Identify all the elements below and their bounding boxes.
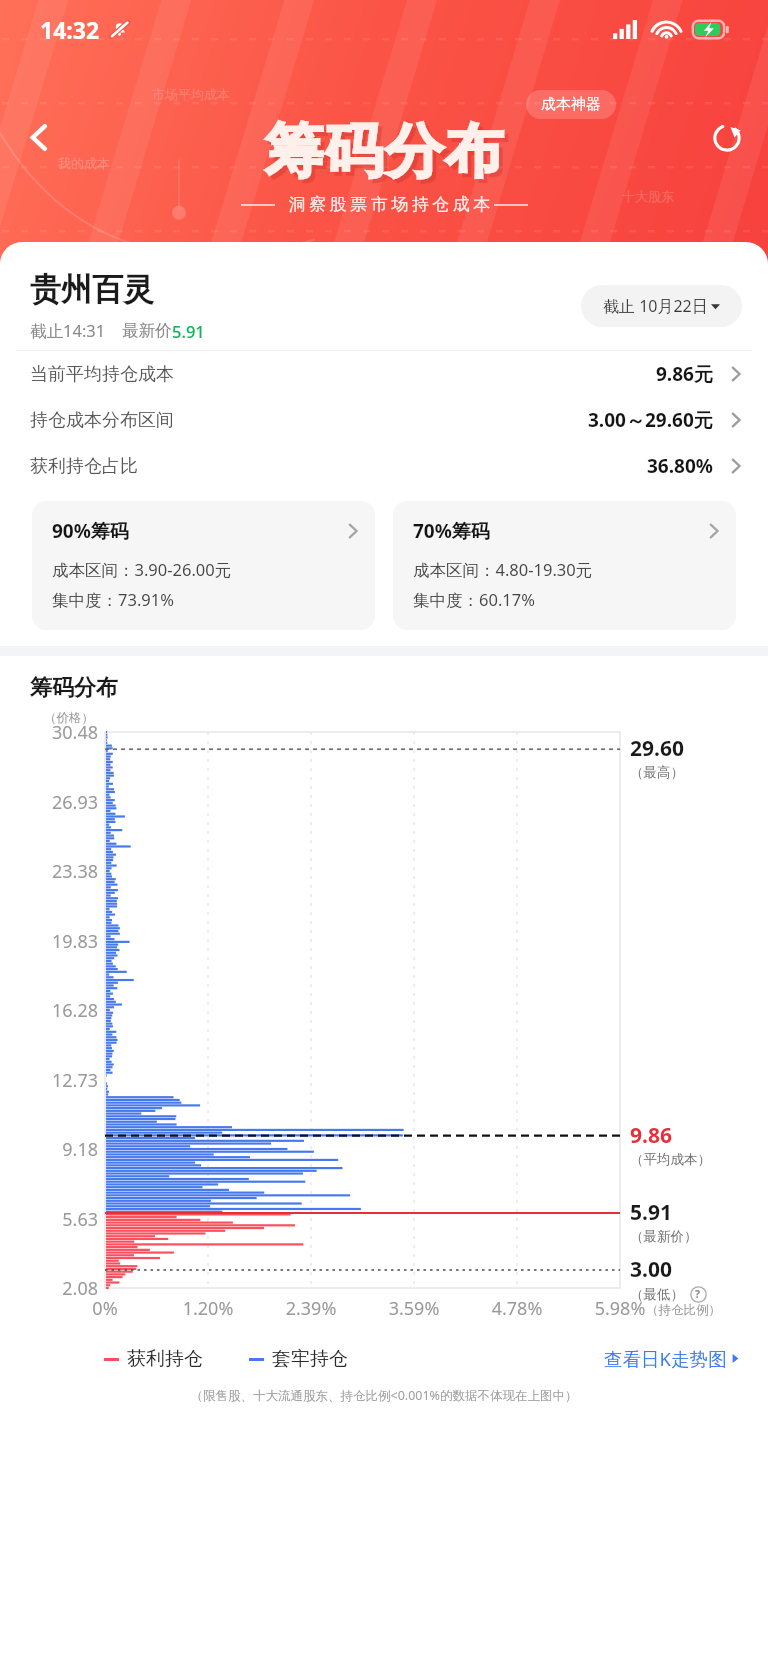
staticText: 14:32 <box>40 14 100 45</box>
staticText: （最新价） <box>630 1228 698 1245</box>
staticText: 集中度：60.17% <box>413 588 535 611</box>
staticText: 9.18 <box>24 1137 98 1162</box>
staticText: 获利持仓 <box>127 1347 203 1371</box>
staticText: 12.73 <box>24 1068 98 1093</box>
staticText: 3.00 <box>630 1255 672 1284</box>
staticText: 查看日K走势图 <box>604 1346 727 1371</box>
staticText: 3.00～29.60元 <box>588 407 713 433</box>
staticText: 23.38 <box>24 859 98 884</box>
staticText: 当前平均持仓成本 <box>30 363 174 386</box>
staticText: 集中度：73.91% <box>52 588 174 611</box>
staticText: 成本神器 <box>541 95 601 114</box>
staticText: 19.83 <box>24 929 98 954</box>
staticText: 2.39% <box>275 1296 347 1321</box>
button[interactable]: 持仓成本分布区间 <box>0 397 768 443</box>
staticText: 筹码分布 <box>30 674 118 702</box>
staticText: （最高） <box>630 764 684 781</box>
staticText: 2.08 <box>24 1276 98 1301</box>
staticText: 洞察股票市场持仓成本 <box>287 194 492 215</box>
staticText: 持仓成本分布区间 <box>30 409 174 432</box>
staticText: 16.28 <box>24 998 98 1023</box>
staticText: 9.86 <box>630 1121 672 1150</box>
staticText: 26.93 <box>24 790 98 815</box>
staticText: 贵州百灵 <box>30 270 154 309</box>
staticText: 成本区间：4.80-19.30元 <box>413 558 593 581</box>
staticText: 市场平均成本 <box>152 86 230 102</box>
staticText: 筹码分布 <box>264 115 504 188</box>
staticText: 30.48 <box>24 720 98 745</box>
staticText: 90%筹码 <box>52 518 129 544</box>
staticText: （最低） <box>630 1286 684 1303</box>
staticText: 筹码分布 <box>268 119 508 192</box>
button[interactable]: 刷新 <box>700 110 754 164</box>
staticText: （持仓比例） <box>646 1302 721 1318</box>
staticText: 5.63 <box>24 1207 98 1232</box>
staticText: 5.98% <box>584 1296 656 1321</box>
staticText: 36.80% <box>647 453 713 479</box>
staticText: 我的成本 <box>58 155 110 171</box>
button[interactable]: 返回 <box>12 110 66 164</box>
button[interactable]: 获利持仓占比 <box>0 443 768 489</box>
staticText: 1.20% <box>172 1296 244 1321</box>
staticText: 成本区间：3.90-26.00元 <box>52 558 232 581</box>
staticText: 套牢持仓 <box>272 1347 348 1371</box>
staticText: 十大股东 <box>622 188 674 204</box>
staticText: （平均成本） <box>630 1151 711 1168</box>
staticText: 截止14:31 <box>30 319 106 342</box>
staticText: （价格） <box>44 710 94 726</box>
staticText: 9.86元 <box>656 361 713 387</box>
staticText: 截止 10月22日 <box>603 295 708 317</box>
staticText: 获利持仓占比 <box>30 455 138 478</box>
button[interactable]: 成本神器 <box>526 90 616 119</box>
staticText: 3.59% <box>378 1296 450 1321</box>
button[interactable]: 获利持仓 <box>104 1347 203 1371</box>
button[interactable]: 查看日K走势图 <box>604 1346 740 1371</box>
button[interactable]: 说明 <box>689 1285 707 1303</box>
staticText: 29.60 <box>630 734 684 763</box>
staticText: 4.78% <box>481 1296 553 1321</box>
button[interactable]: 90%筹码 <box>32 501 375 630</box>
staticText: 最新价 <box>122 320 172 341</box>
button[interactable]: 套牢持仓 <box>249 1347 348 1371</box>
staticText: 5.91 <box>630 1198 672 1227</box>
staticText: 70%筹码 <box>413 518 490 544</box>
button[interactable]: 70%筹码 <box>393 501 736 630</box>
staticText: 0% <box>69 1296 141 1321</box>
button[interactable]: 当前平均持仓成本 <box>0 351 768 397</box>
button[interactable]: 截止 10月22日 <box>581 285 742 327</box>
staticText: 5.91 <box>172 320 205 342</box>
staticText: （限售股、十大流通股东、持仓比例<0.001%的数据不体现在上图中） <box>0 1387 768 1404</box>
staticText: ? <box>695 1287 701 1301</box>
